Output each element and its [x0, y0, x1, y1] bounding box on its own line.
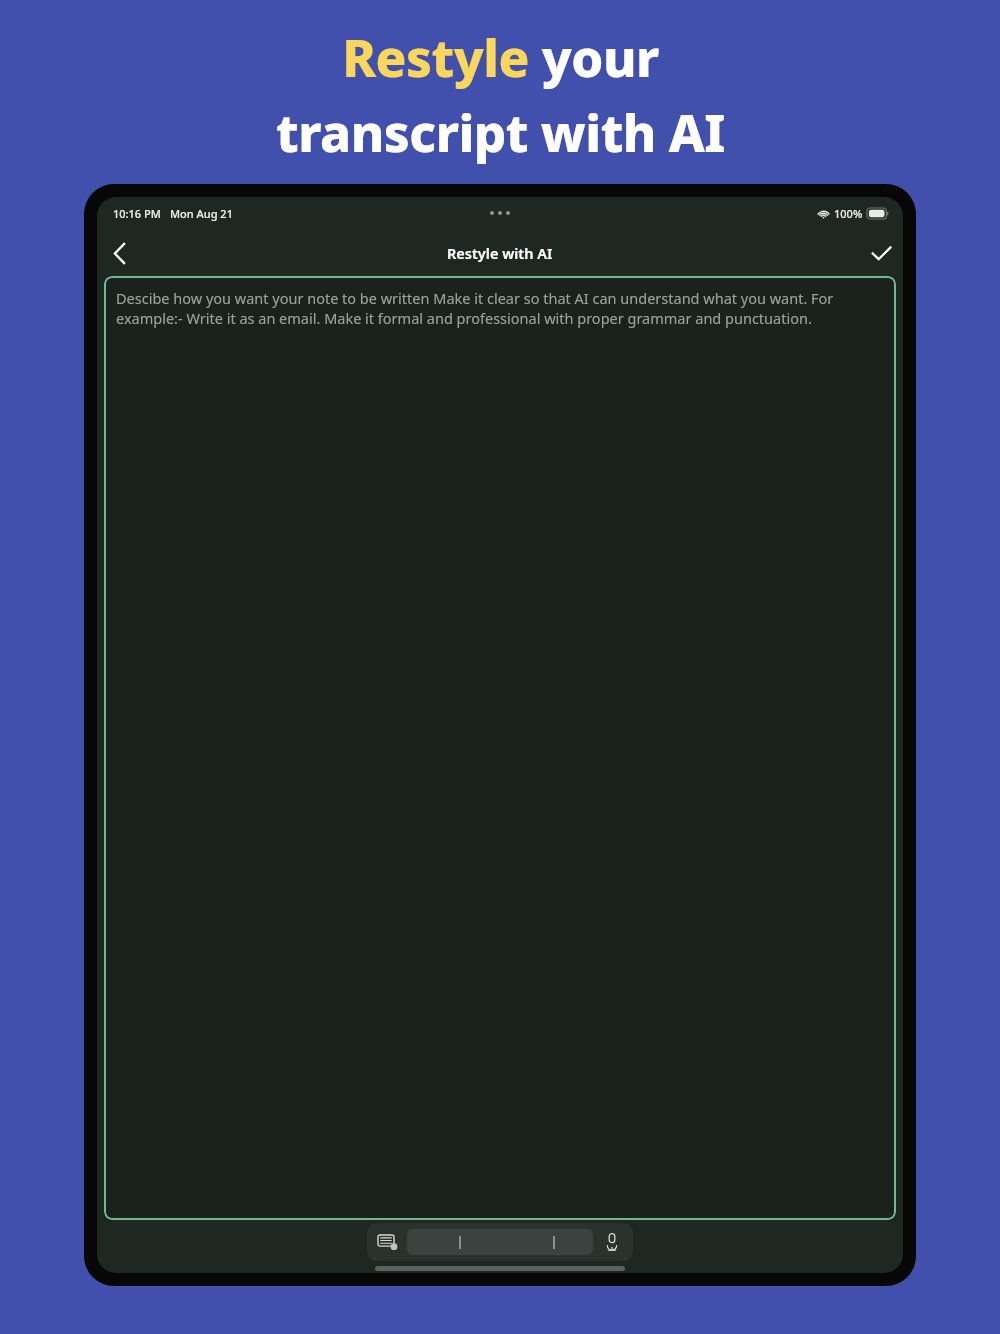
staticText: transcript with AI: [276, 97, 725, 166]
staticText: Restyle your: [342, 22, 659, 91]
button[interactable]: Descibe how you want your note to be wri…: [104, 276, 896, 1220]
staticText: Mon Aug 21: [170, 206, 233, 221]
button[interactable]: Text input: [407, 1229, 593, 1255]
staticText: Restyle with AI: [447, 243, 553, 263]
staticText: 10:16 PM: [113, 206, 161, 221]
button[interactable]: Show keyboard: [375, 1229, 401, 1255]
button[interactable]: Back: [97, 231, 141, 275]
staticText: 100%: [834, 206, 863, 221]
button[interactable]: Done: [859, 231, 903, 275]
button[interactable]: Dictate: [599, 1229, 625, 1255]
staticText: Descibe how you want your note to be wri…: [116, 288, 884, 329]
